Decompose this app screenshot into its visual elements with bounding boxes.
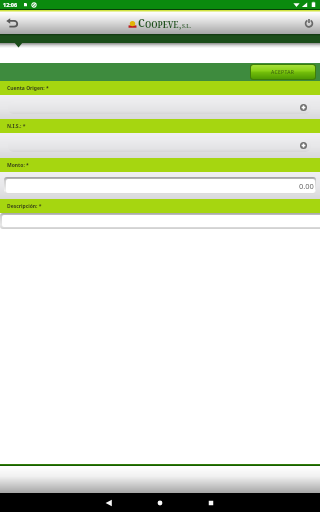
staticText: Descripción: *: [7, 203, 42, 210]
button[interactable]: Recents: [198, 493, 224, 512]
button[interactable]: Back: [2, 13, 22, 33]
staticText: 0.00: [299, 181, 314, 191]
button[interactable]: ACEPTAR: [251, 65, 315, 79]
staticText: N.I.S.: *: [7, 123, 26, 130]
staticText: ACEPTAR: [271, 69, 295, 76]
button[interactable]: [8, 139, 311, 152]
staticText: Monto: *: [7, 162, 29, 169]
staticText: C: [138, 16, 145, 30]
staticText: ,: [179, 19, 182, 30]
button[interactable]: 0.00: [6, 179, 315, 193]
button[interactable]: Home: [147, 493, 173, 512]
button[interactable]: Back: [96, 493, 122, 512]
staticText: Cuenta Origen: *: [7, 85, 49, 92]
staticText: OOPEVE: [145, 19, 179, 30]
staticText: 12:06: [3, 1, 18, 8]
staticText: S.L.: [182, 23, 192, 30]
button[interactable]: [8, 101, 311, 114]
button[interactable]: Logout: [299, 13, 319, 33]
